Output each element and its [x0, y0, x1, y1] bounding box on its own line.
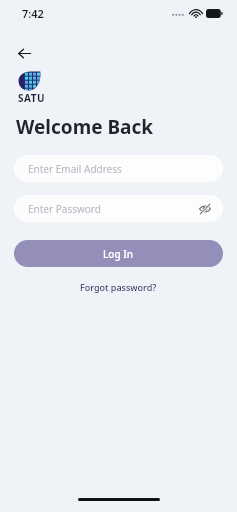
staticText: 7:42 [22, 6, 44, 21]
staticText: Log In [103, 247, 134, 261]
staticText: Forgot password? [80, 281, 157, 293]
staticText: Enter Password [28, 202, 101, 216]
staticText: Welcome Back [16, 114, 154, 140]
staticText: SATU [18, 91, 46, 105]
button[interactable]: Enter Email Address [14, 155, 223, 182]
button[interactable]: Enter Password [14, 195, 223, 222]
staticText: Enter Email Address [28, 162, 122, 176]
button[interactable]: Show password [195, 199, 215, 219]
button[interactable]: Log In [14, 240, 223, 267]
button[interactable]: Back [9, 38, 39, 68]
button[interactable]: Forgot password? [72, 278, 165, 296]
